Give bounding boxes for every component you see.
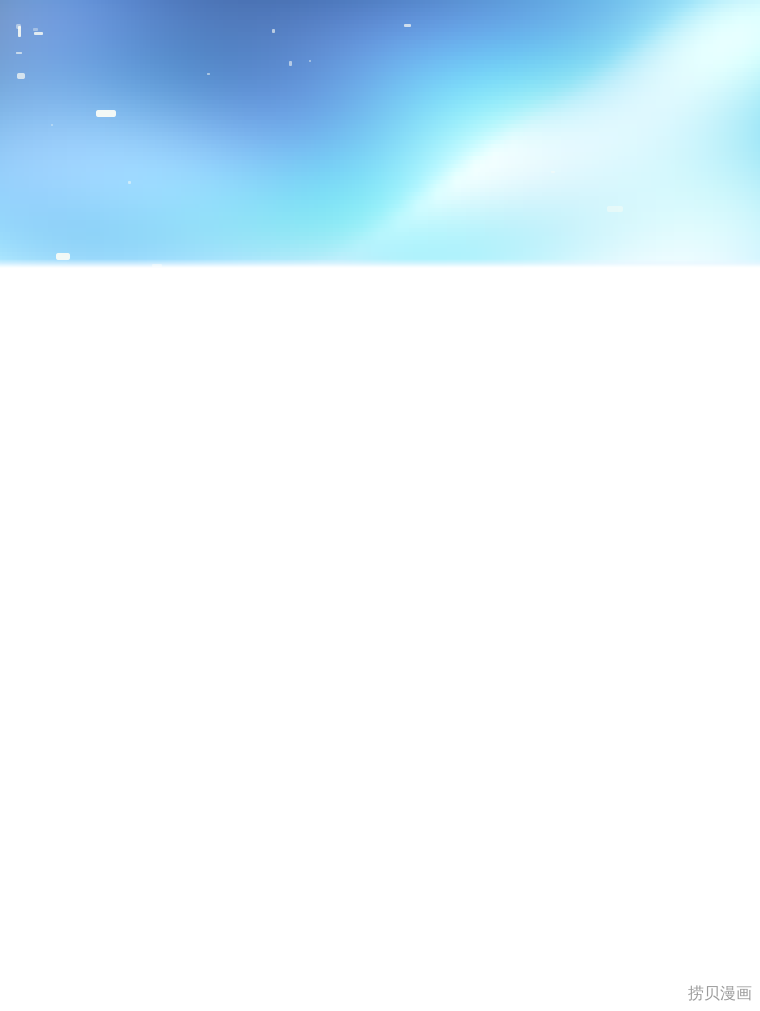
staticText: 捞贝漫画 — [688, 983, 752, 1003]
